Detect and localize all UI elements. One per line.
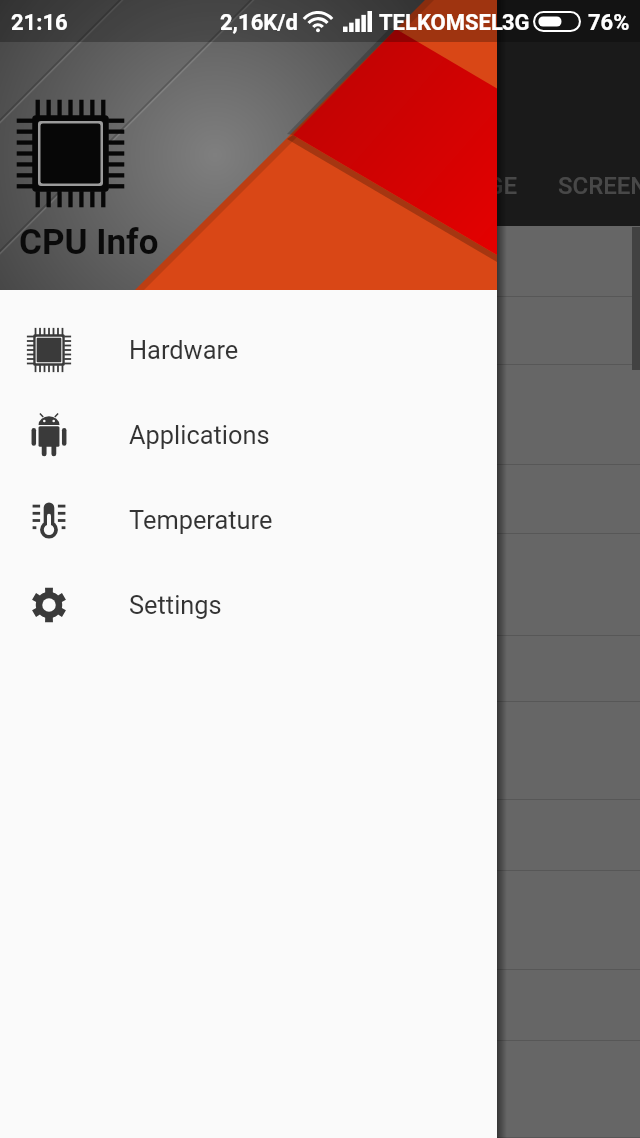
staticText: Temperature [129,505,273,535]
button[interactable]: SoC [0,226,640,297]
button[interactable]: SCREEN [558,172,640,200]
button[interactable]: CPU Architecture [0,365,640,465]
staticText: Cores [32,485,97,514]
staticText: SoC [32,247,78,276]
button[interactable]: Process [0,297,640,365]
staticText: 21:16 [11,10,68,36]
button[interactable]: Instruction Sets [0,1041,640,1138]
button[interactable]: Temperature [0,477,497,562]
button[interactable]: Applications [0,392,497,477]
button[interactable]: Cores [0,465,640,534]
staticText: Applications [129,420,270,450]
staticText: Settings [129,590,222,620]
button[interactable]: STORAGE [411,172,517,200]
button[interactable]: CPU Governor [0,534,640,636]
button[interactable]: CPU Clock Speed [0,636,640,702]
staticText: Process [32,317,123,346]
button[interactable]: Core 1 (MHz) [0,702,640,800]
button[interactable]: Core 3 (MHz) [0,871,640,970]
staticText: interactive [32,590,134,616]
staticText: CPU Info [19,222,159,263]
staticText: TELKOMSEL [379,10,503,36]
staticText: 2,16K/d [220,10,298,36]
staticText: Hardware [129,335,239,365]
staticText: STORAGE [411,172,517,200]
staticText: 76% [588,10,630,36]
staticText: 3G [502,10,530,36]
staticText: ARMv8 [32,420,103,446]
staticText: SCREEN [558,172,640,200]
button[interactable]: Core 4 (MHz) [0,970,640,1041]
button[interactable]: Hardware [0,307,497,392]
button[interactable]: Core 2 (MHz) [0,800,640,871]
button[interactable]: Settings [0,562,497,647]
